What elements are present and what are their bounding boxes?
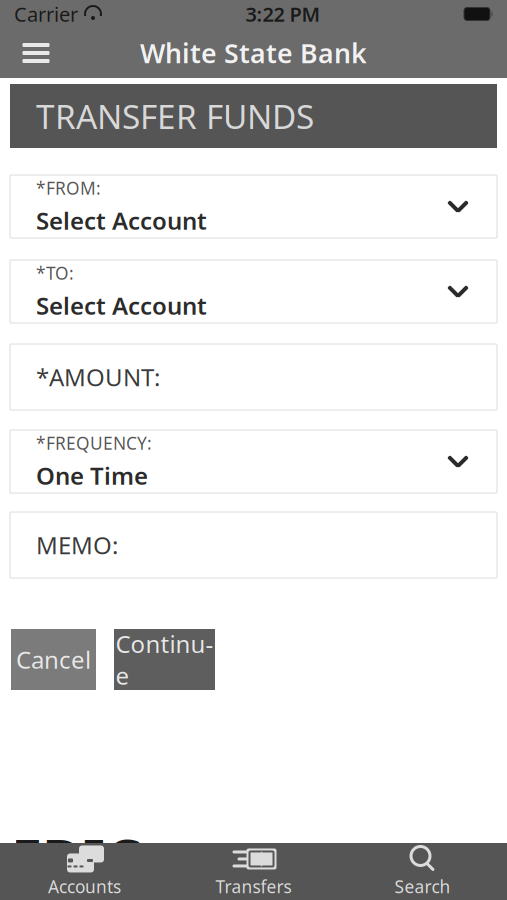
staticText: TRANSFER FUNDS: [36, 94, 314, 138]
staticText: MEMO:: [36, 529, 118, 561]
button[interactable]: Menu: [11, 28, 61, 78]
staticText: Select Account: [36, 205, 207, 236]
staticText: Select Account: [36, 290, 207, 321]
staticText: FDIC: [11, 821, 141, 895]
button[interactable]: Cancel: [11, 629, 96, 690]
staticText: Carrier: [14, 1, 78, 27]
staticText: 3:22 PM: [245, 1, 320, 27]
button[interactable]: Search: [338, 843, 507, 900]
staticText: *TO:: [36, 262, 74, 285]
button[interactable]: Accounts: [0, 843, 169, 900]
button[interactable]: Continue: [114, 629, 215, 690]
staticText: One Time: [36, 460, 148, 491]
button[interactable]: $: [169, 843, 338, 900]
staticText: *FROM:: [36, 177, 101, 200]
staticText: *FREQUENCY:: [36, 432, 152, 455]
button[interactable]: *FROM:: [10, 175, 497, 238]
staticText: White State Bank: [140, 35, 367, 71]
staticText: *AMOUNT:: [36, 361, 160, 393]
button[interactable]: *TO:: [10, 260, 497, 323]
staticText: Accounts: [48, 875, 121, 898]
staticText: Continue: [115, 628, 213, 691]
staticText: $: [256, 847, 266, 870]
staticText: Search: [394, 875, 450, 898]
button[interactable]: MEMO:: [10, 512, 497, 578]
staticText: Transfers: [215, 875, 291, 898]
staticText: Cancel: [16, 644, 91, 675]
button[interactable]: *AMOUNT:: [10, 344, 497, 410]
button[interactable]: *FREQUENCY:: [10, 430, 497, 493]
